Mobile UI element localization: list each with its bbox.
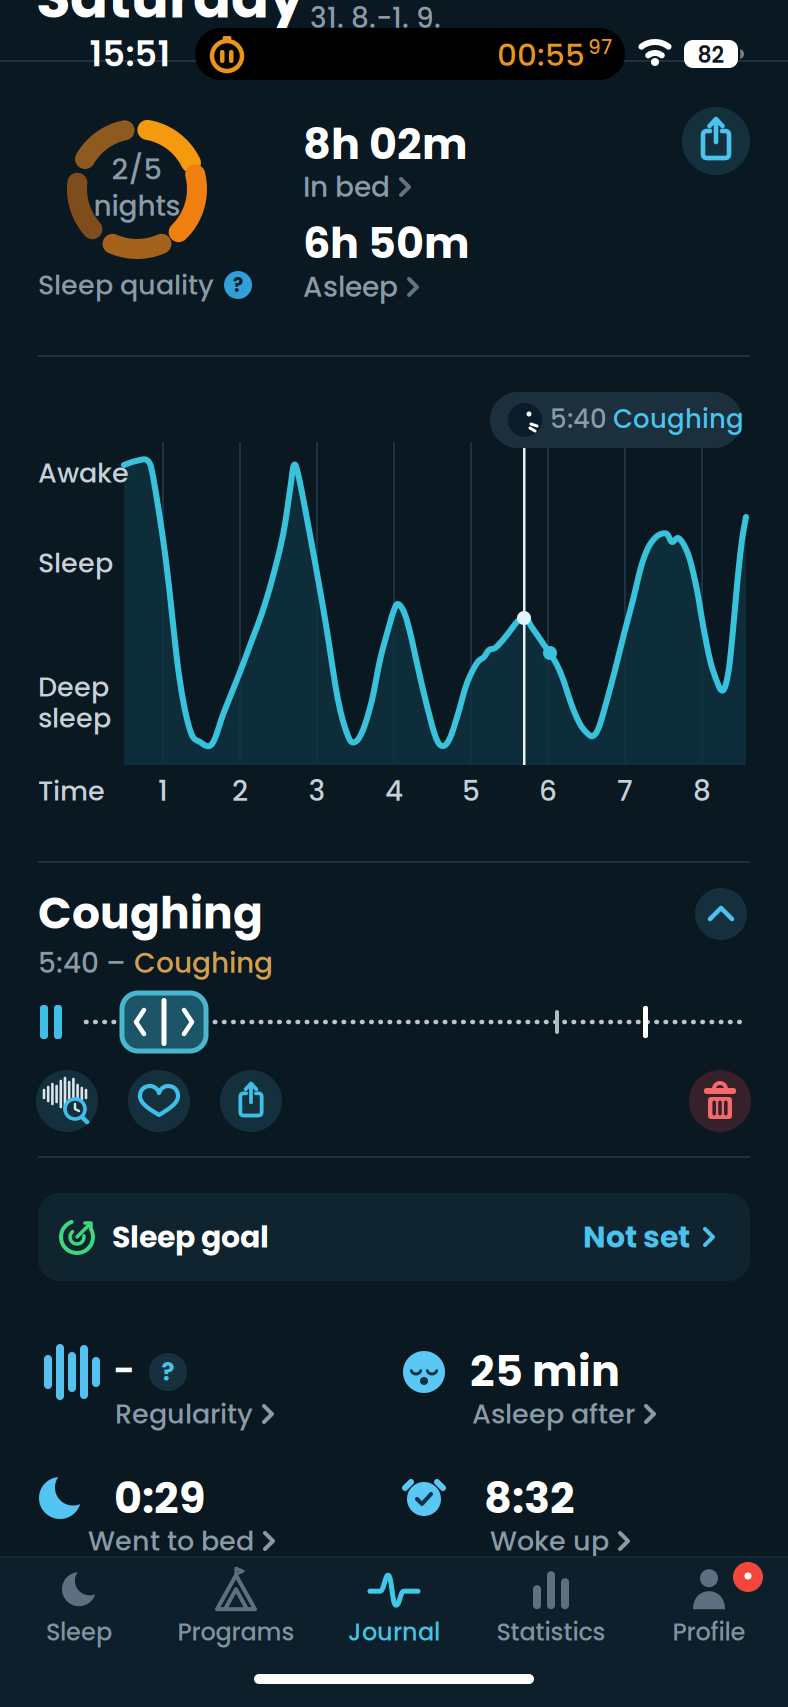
button[interactable]: Programs: [177, 1565, 294, 1649]
staticText: ?: [233, 272, 243, 298]
staticText: Asleep after: [472, 1395, 635, 1433]
staticText: 5:40: [550, 401, 607, 437]
button[interactable]: Regularity: [115, 1395, 275, 1433]
button[interactable]: [122, 993, 206, 1051]
button[interactable]: Sleep goal: [38, 1193, 750, 1281]
button[interactable]: Sleep quality: [38, 266, 252, 304]
button[interactable]: Asleep: [303, 267, 420, 307]
button[interactable]: [689, 1070, 751, 1132]
staticText: 4: [385, 771, 403, 811]
staticText: Woke up: [490, 1522, 609, 1560]
staticText: Sleep goal: [112, 1216, 269, 1258]
staticText: Regularity: [115, 1395, 253, 1433]
staticText: Deep: [38, 668, 109, 706]
staticText: 6h 50m: [303, 213, 470, 273]
button[interactable]: Statistics: [496, 1565, 605, 1649]
staticText: -: [113, 1344, 135, 1398]
staticText: 31. 8.-1. 9.: [310, 0, 441, 38]
staticText: 5:40 –: [38, 943, 126, 983]
staticText: 8: [693, 771, 711, 811]
button[interactable]: Journal: [348, 1565, 440, 1649]
staticText: Coughing: [134, 943, 273, 983]
staticText: 5: [462, 771, 480, 811]
staticText: Programs: [177, 1615, 294, 1649]
staticText: 2: [232, 771, 248, 811]
staticText: 97: [588, 33, 612, 61]
staticText: Not set: [583, 1216, 690, 1258]
staticText: sleep: [38, 699, 111, 737]
staticText: 7: [617, 771, 633, 811]
staticText: ?: [161, 1355, 174, 1389]
button[interactable]: [36, 1070, 98, 1132]
staticText: Awake: [38, 454, 129, 492]
button[interactable]: Profile: [672, 1565, 745, 1649]
button[interactable]: ?: [149, 1353, 187, 1391]
button[interactable]: [220, 1070, 282, 1132]
staticText: Went to bed: [88, 1522, 254, 1560]
staticText: 3: [308, 771, 325, 811]
staticText: 8:32: [484, 1468, 575, 1528]
staticText: 00:55: [497, 33, 585, 77]
button[interactable]: [40, 1005, 62, 1039]
staticText: Profile: [672, 1615, 745, 1649]
staticText: 6: [539, 771, 557, 811]
staticText: Coughing: [38, 882, 263, 944]
button[interactable]: [128, 1070, 190, 1132]
button[interactable]: [695, 888, 747, 940]
staticText: Coughing: [613, 401, 744, 437]
staticText: Sleep quality: [38, 266, 214, 304]
staticText: Saturday: [36, 0, 304, 37]
staticText: 1: [158, 771, 168, 811]
staticText: Sleep: [46, 1615, 112, 1649]
staticText: nights: [93, 186, 180, 226]
button[interactable]: [682, 107, 750, 175]
button[interactable]: Sleep: [46, 1565, 112, 1649]
button[interactable]: Woke up: [490, 1522, 631, 1560]
button[interactable]: Went to bed: [88, 1522, 276, 1560]
staticText: Statistics: [496, 1615, 605, 1649]
staticText: In bed: [303, 167, 390, 207]
staticText: 2/5: [111, 149, 162, 189]
staticText: Journal: [348, 1615, 440, 1649]
staticText: 25 min: [470, 1341, 620, 1401]
staticText: Time: [38, 772, 105, 810]
button[interactable]: Asleep after: [472, 1395, 657, 1433]
staticText: 15:51: [89, 29, 170, 78]
staticText: 8h 02m: [303, 114, 468, 174]
button[interactable]: In bed: [303, 167, 412, 207]
staticText: Sleep: [38, 544, 113, 582]
staticText: 82: [697, 40, 724, 70]
staticText: 0:29: [114, 1468, 205, 1528]
staticText: Asleep: [303, 267, 398, 307]
